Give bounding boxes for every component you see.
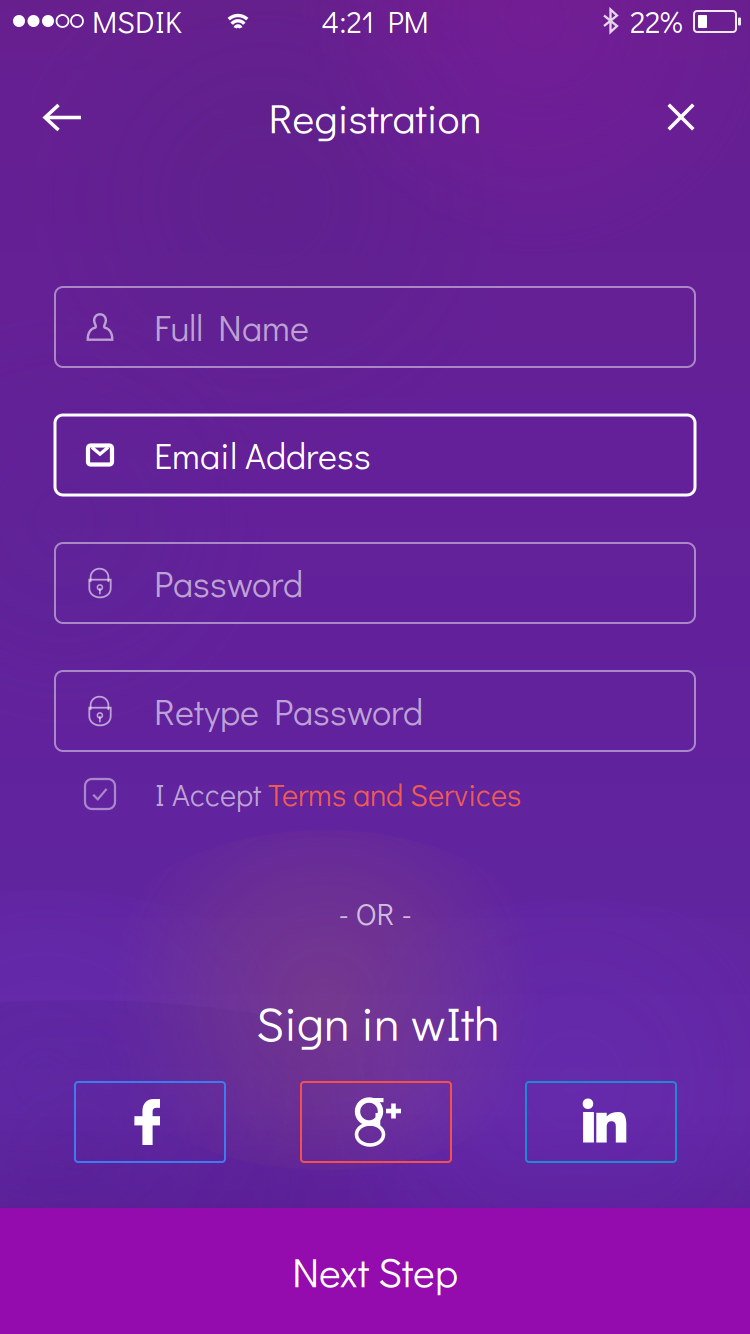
staticText: Retype Password [154, 687, 423, 735]
staticText: - OR - [338, 893, 411, 933]
button[interactable]: Close [647, 83, 715, 151]
button[interactable]: Password [55, 543, 695, 623]
button[interactable]: I Accept [85, 774, 655, 814]
staticText: Email Address [154, 431, 371, 479]
staticText: Password [154, 559, 303, 607]
staticText: I Accept [155, 774, 268, 814]
button[interactable]: Sign in with Google Plus [301, 1082, 451, 1162]
staticText: 22% [630, 1, 683, 41]
button[interactable]: Retype Password [55, 671, 695, 751]
button[interactable]: Full Name [55, 287, 695, 367]
staticText: Full Name [154, 303, 309, 351]
staticText: Sign in wIth [256, 990, 500, 1053]
button[interactable]: Next Step [0, 1208, 750, 1334]
button[interactable]: Back [23, 83, 103, 152]
staticText: Registration [268, 90, 481, 144]
button[interactable]: Sign in with Facebook [75, 1082, 225, 1162]
staticText: Terms and Services [268, 774, 521, 814]
button[interactable]: Sign in with LinkedIn [526, 1082, 676, 1162]
button[interactable]: Email Address [55, 415, 695, 495]
staticText: Next Step [292, 1244, 458, 1298]
staticText: 4:21 PM [321, 1, 428, 41]
staticText: MSDIK [92, 1, 182, 41]
